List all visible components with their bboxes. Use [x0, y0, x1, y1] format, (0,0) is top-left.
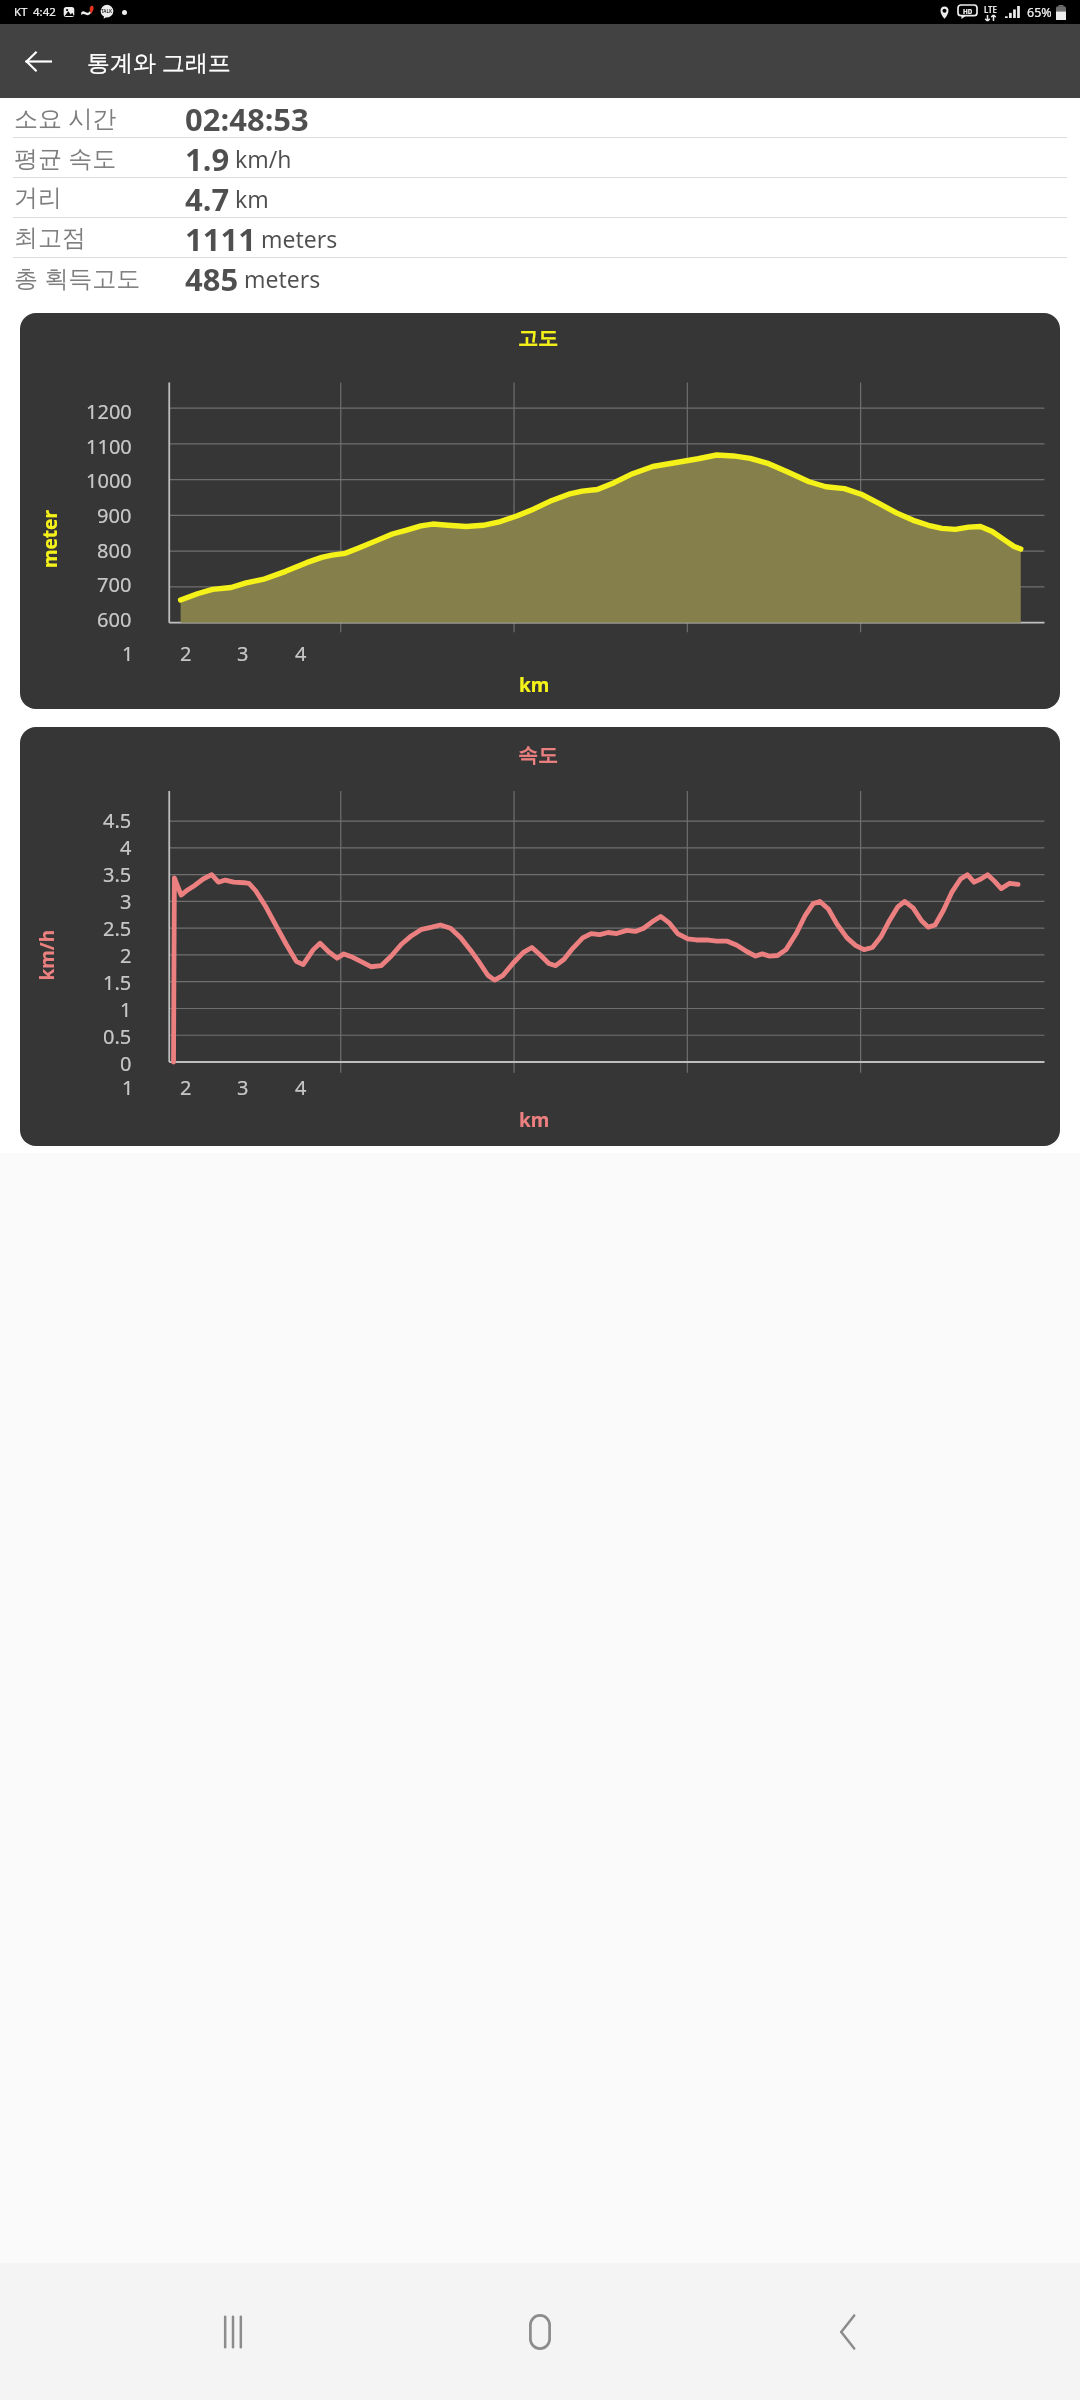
- staticText: 02:48:53: [185, 98, 309, 137]
- button[interactable]: Back: [773, 2263, 923, 2400]
- button[interactable]: 평균 속도: [0, 138, 1080, 177]
- staticText: 1: [122, 1074, 134, 1101]
- staticText: 1100: [86, 433, 132, 460]
- staticText: km: [519, 672, 550, 698]
- staticText: 3: [120, 888, 132, 915]
- staticText: 2: [120, 942, 132, 969]
- staticText: 1111: [185, 218, 256, 257]
- staticText: meters: [261, 223, 338, 254]
- staticText: 2.5: [103, 915, 132, 942]
- staticText: km: [235, 183, 269, 214]
- staticText: 최고점: [14, 223, 86, 253]
- staticText: km/h: [33, 929, 59, 980]
- staticText: 1: [122, 640, 134, 667]
- button[interactable]: 거리: [0, 178, 1080, 217]
- staticText: 65%: [1027, 4, 1052, 21]
- staticText: 총 획득고도: [14, 261, 141, 294]
- staticText: 1: [120, 996, 132, 1023]
- staticText: 1.9: [185, 138, 230, 177]
- button[interactable]: Home: [465, 2263, 615, 2400]
- button[interactable]: 총 획득고도: [0, 258, 1080, 297]
- staticText: 2: [180, 1074, 192, 1101]
- staticText: km/h: [235, 143, 292, 174]
- staticText: 485: [185, 258, 239, 297]
- staticText: 600: [97, 606, 132, 633]
- staticText: 4.7: [185, 178, 230, 217]
- button[interactable]: 소요 시간: [0, 98, 1080, 137]
- staticText: HD: [963, 7, 973, 15]
- staticText: 고도: [518, 326, 558, 351]
- staticText: 속도: [518, 743, 558, 768]
- staticText: 900: [97, 502, 132, 529]
- button[interactable]: 고도: [20, 313, 1060, 709]
- staticText: km: [519, 1107, 550, 1133]
- staticText: meter: [37, 510, 63, 568]
- button[interactable]: 속도: [20, 727, 1060, 1146]
- staticText: 1200: [86, 398, 132, 425]
- button[interactable]: Recent apps: [158, 2263, 308, 2400]
- staticText: 3: [237, 640, 249, 667]
- staticText: LTE: [984, 4, 998, 15]
- button[interactable]: Back: [14, 37, 62, 85]
- staticText: 2: [180, 640, 192, 667]
- staticText: 거리: [14, 183, 62, 213]
- staticText: 소요 시간: [14, 101, 117, 134]
- staticText: 0.5: [103, 1023, 132, 1050]
- staticText: 통계와 그래프: [87, 46, 231, 77]
- staticText: meters: [244, 263, 321, 294]
- staticText: 4.5: [103, 807, 132, 834]
- staticText: 3: [237, 1074, 249, 1101]
- staticText: TALK: [101, 8, 113, 14]
- staticText: 4:42: [33, 4, 56, 20]
- staticText: 800: [97, 537, 132, 564]
- staticText: 4: [120, 834, 132, 861]
- staticText: 1.5: [103, 969, 132, 996]
- staticText: 4: [295, 640, 307, 667]
- staticText: 700: [97, 571, 132, 598]
- staticText: 3.5: [103, 861, 132, 888]
- staticText: 평균 속도: [14, 141, 117, 174]
- staticText: KT: [14, 4, 28, 20]
- staticText: 4: [295, 1074, 307, 1101]
- staticText: 1000: [86, 467, 132, 494]
- button[interactable]: 최고점: [0, 218, 1080, 257]
- staticText: 0: [120, 1050, 132, 1072]
